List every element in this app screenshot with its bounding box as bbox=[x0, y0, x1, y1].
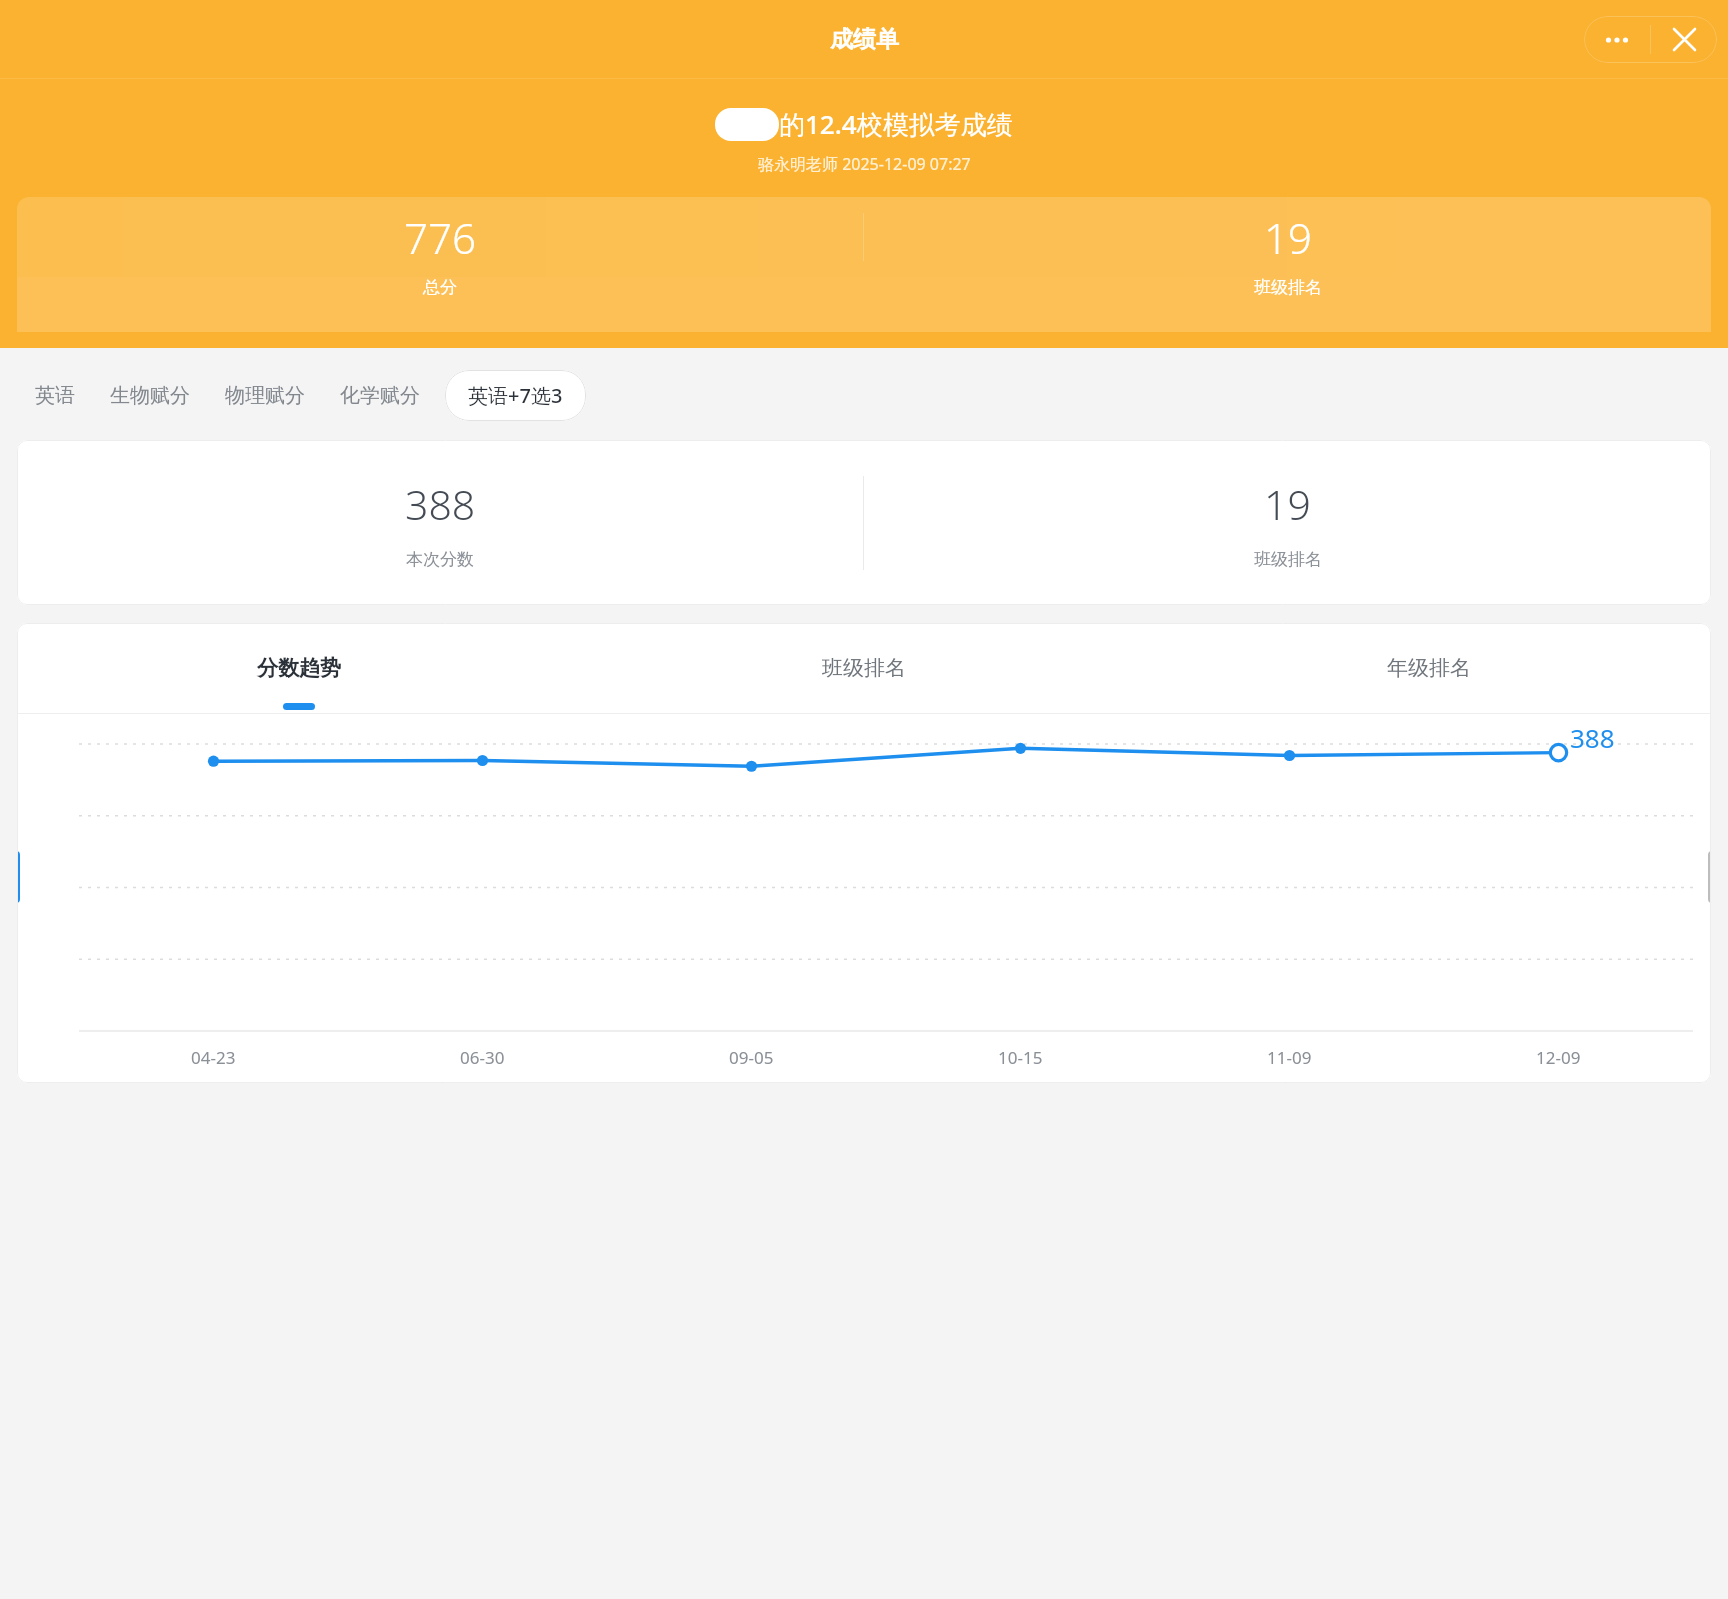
staticText: 10-15 bbox=[998, 1046, 1043, 1069]
staticText: 班级排名 bbox=[822, 655, 906, 681]
button[interactable]: Close bbox=[1651, 16, 1717, 63]
staticText: 04-23 bbox=[191, 1046, 236, 1069]
staticText: 骆永明老师 2025-12-09 07:27 bbox=[758, 153, 971, 175]
staticText: 英语 bbox=[35, 383, 75, 408]
staticText: 分数趋势 bbox=[257, 655, 341, 681]
button[interactable]: 年级排名 bbox=[1146, 623, 1711, 713]
staticText: 成绩单 bbox=[830, 25, 899, 54]
button[interactable]: More options bbox=[1584, 16, 1650, 63]
staticText: 生物赋分 bbox=[110, 383, 190, 408]
staticText: 19 bbox=[1264, 209, 1312, 266]
staticText: 化学赋分 bbox=[340, 383, 420, 408]
staticText: 388 bbox=[1570, 720, 1615, 755]
button[interactable]: 英语 bbox=[25, 375, 85, 416]
staticText: 776 bbox=[404, 209, 476, 266]
button[interactable]: Previous bbox=[17, 851, 20, 903]
staticText: 总分 bbox=[423, 277, 457, 298]
staticText: 11-09 bbox=[1267, 1046, 1312, 1069]
button[interactable]: 物理赋分 bbox=[215, 375, 315, 416]
staticText: 06-30 bbox=[460, 1046, 505, 1069]
staticText: 英语+7选3 bbox=[468, 382, 563, 409]
staticText: 本次分数 bbox=[406, 549, 474, 570]
staticText: 物理赋分 bbox=[225, 383, 305, 408]
staticText: 09-05 bbox=[729, 1046, 774, 1069]
button[interactable]: 生物赋分 bbox=[100, 375, 200, 416]
button[interactable]: 班级排名 bbox=[581, 623, 1146, 713]
staticText: 年级排名 bbox=[1387, 655, 1471, 681]
staticText: 班级排名 bbox=[1254, 549, 1322, 570]
staticText: 19 bbox=[1264, 476, 1311, 532]
staticText: 的12.4校模拟考成绩 bbox=[779, 106, 1013, 142]
button[interactable]: 化学赋分 bbox=[330, 375, 430, 416]
staticText: 12-09 bbox=[1536, 1046, 1581, 1069]
staticText: 班级排名 bbox=[1254, 277, 1322, 298]
staticText: 388 bbox=[405, 476, 476, 532]
button[interactable]: Next bbox=[1708, 851, 1711, 903]
button[interactable]: 分数趋势 bbox=[17, 623, 581, 713]
button[interactable]: 英语+7选3 bbox=[445, 370, 586, 421]
